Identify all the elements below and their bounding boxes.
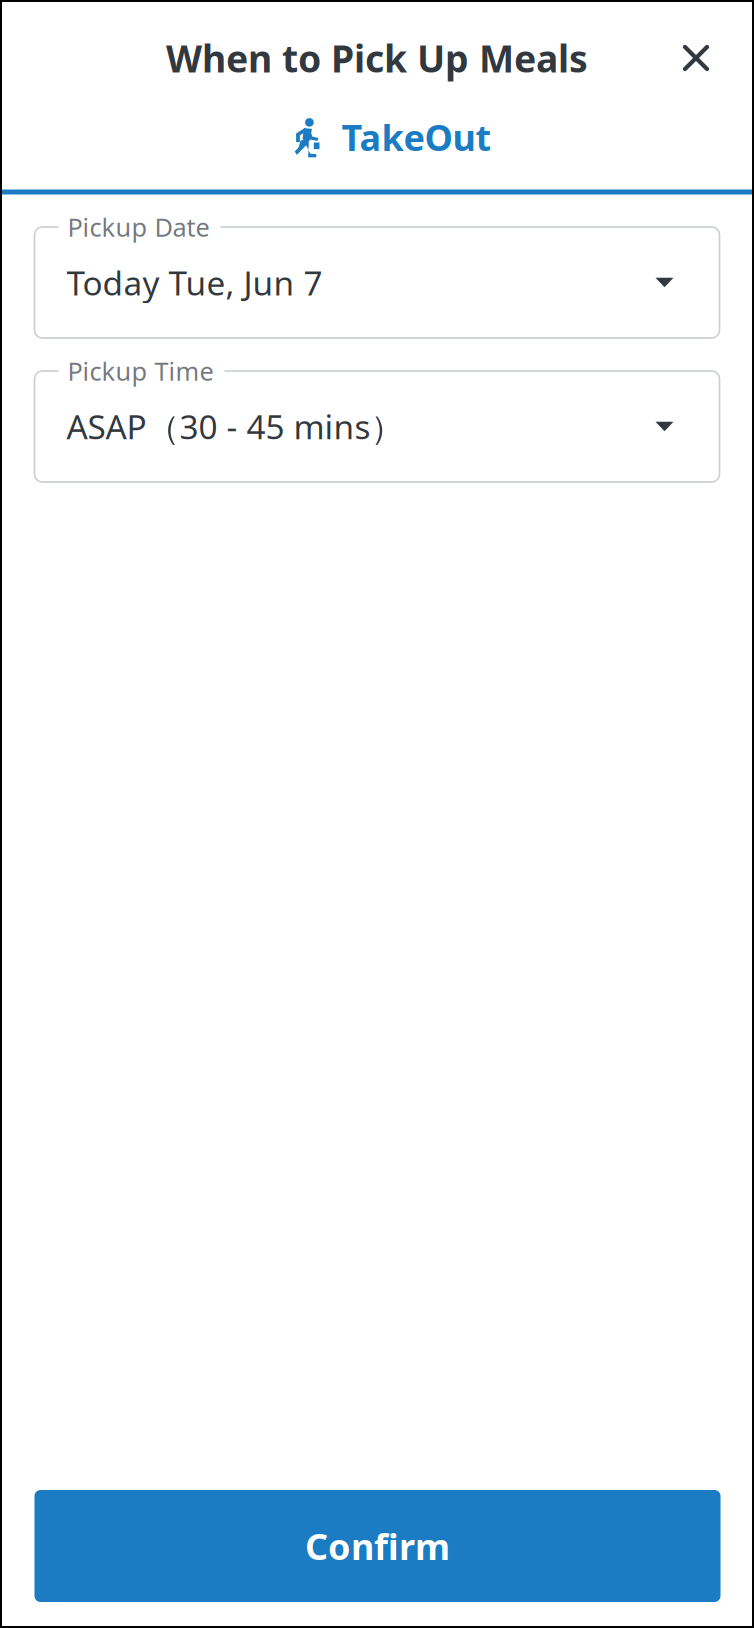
staticText: TakeOut xyxy=(341,113,491,161)
button[interactable]: ASAP（30 - 45 mins） xyxy=(34,371,719,482)
staticText: ASAP（30 - 45 mins） xyxy=(66,404,403,449)
button[interactable]: Today Tue, Jun 7 xyxy=(34,227,719,338)
button[interactable]: Close xyxy=(659,21,733,95)
staticText: Pickup Date xyxy=(67,210,209,244)
button[interactable]: Confirm xyxy=(34,1490,720,1602)
staticText: When to Pick Up Meals xyxy=(166,33,588,83)
staticText: Today Tue, Jun 7 xyxy=(66,260,322,305)
staticText: Pickup Time xyxy=(67,354,213,388)
staticText: Confirm xyxy=(305,1522,450,1570)
